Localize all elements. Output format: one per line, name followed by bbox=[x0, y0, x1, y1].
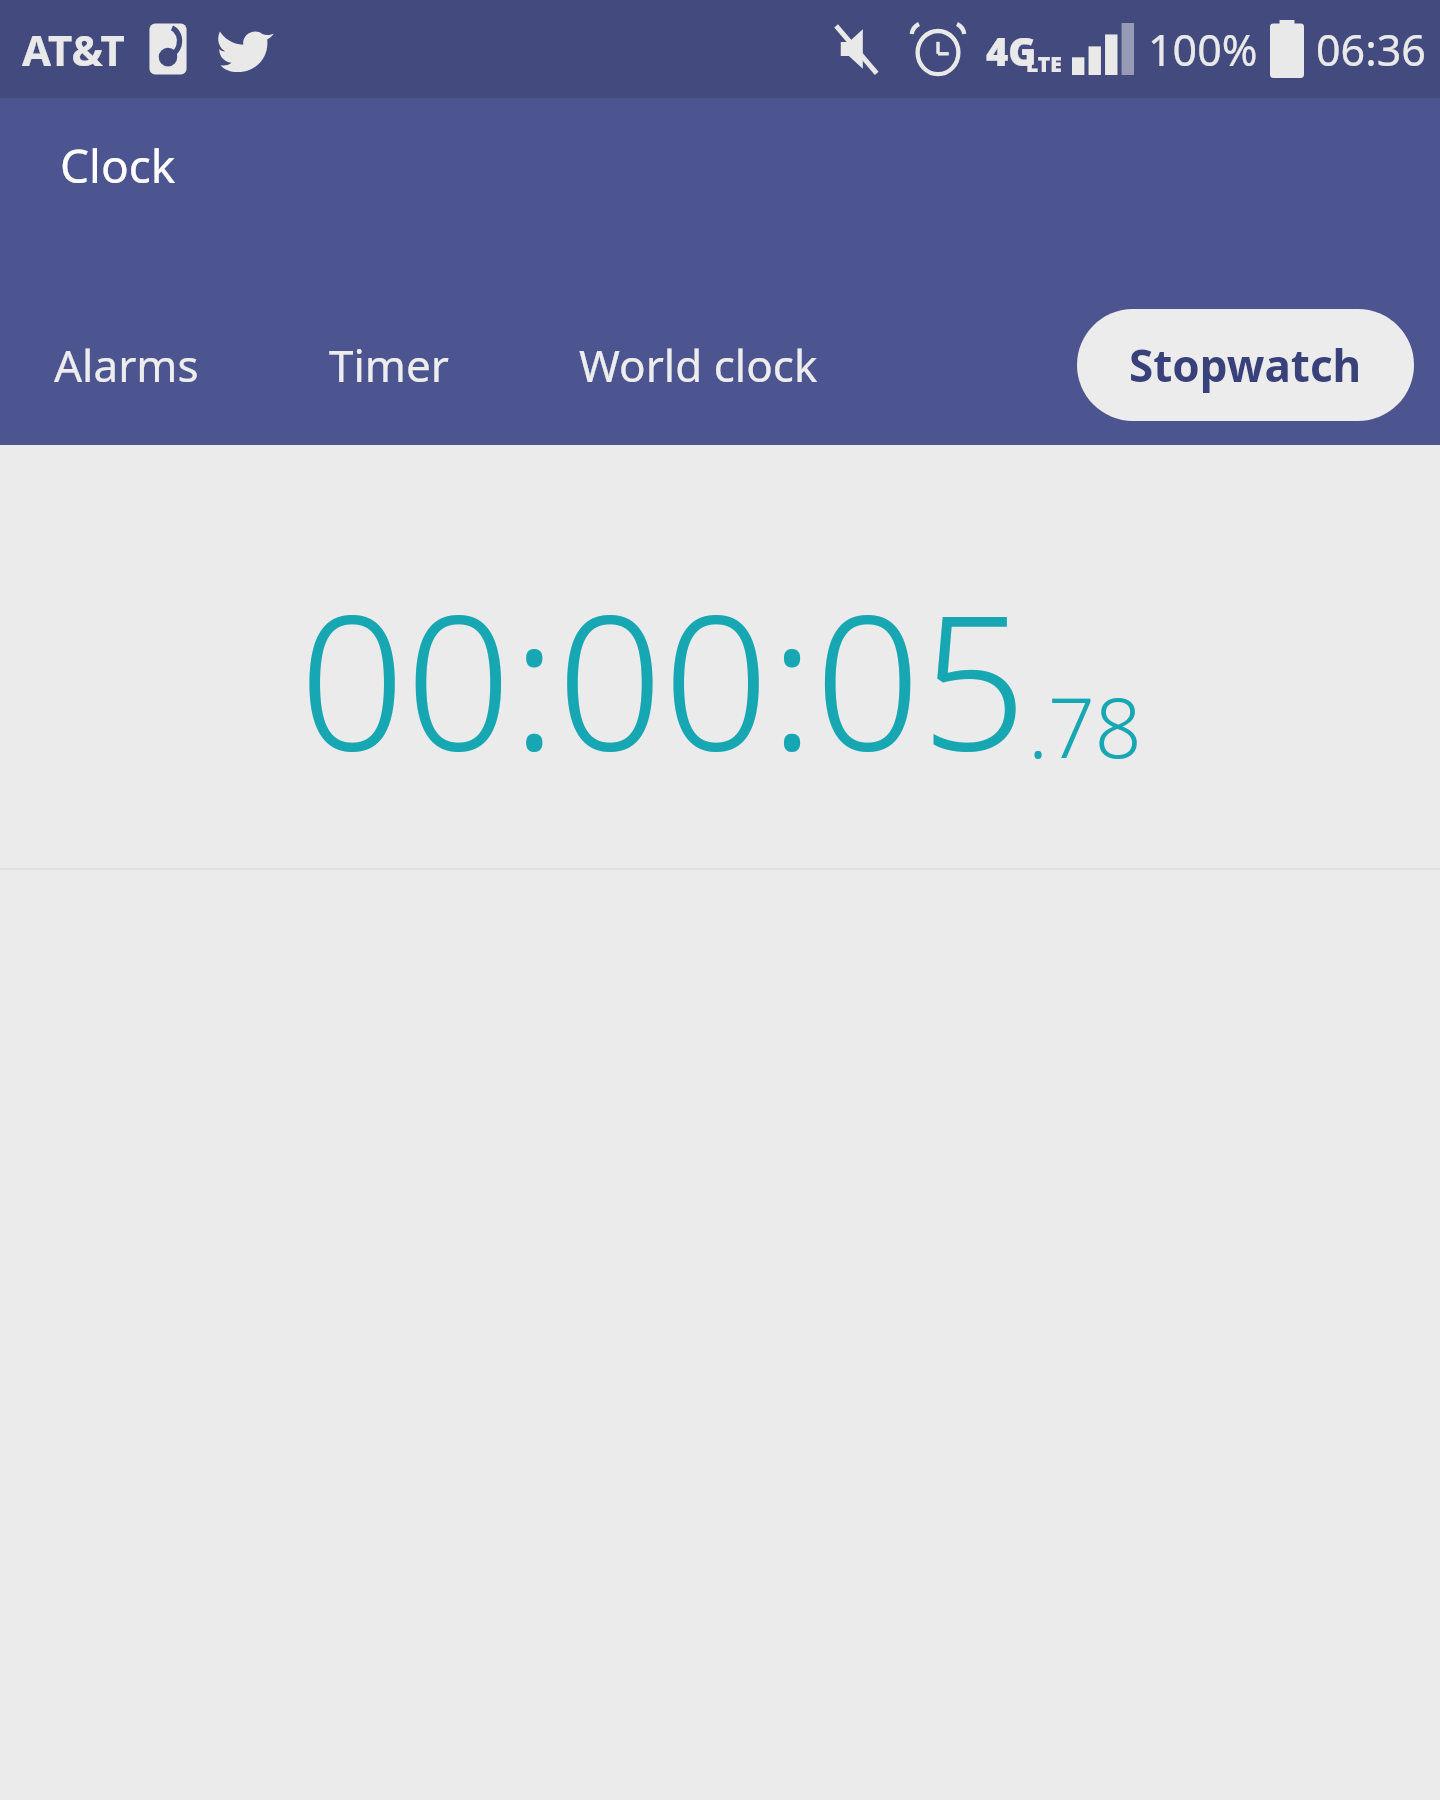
button[interactable]: World clock bbox=[569, 317, 828, 413]
staticText: Timer bbox=[329, 335, 449, 395]
button[interactable]: Alarms bbox=[44, 317, 209, 413]
staticText: 00:00:05 bbox=[299, 551, 1028, 804]
staticText: 4G bbox=[986, 25, 1037, 77]
staticText: Alarms bbox=[54, 335, 199, 395]
button[interactable]: Stopwatch bbox=[1077, 309, 1414, 421]
button[interactable]: Timer bbox=[319, 317, 459, 413]
staticText: 06:36 bbox=[1316, 20, 1426, 79]
button[interactable]: Stopwatch elapsed time bbox=[0, 445, 1440, 870]
staticText: 100% bbox=[1148, 20, 1258, 79]
staticText: AT&T bbox=[22, 21, 125, 78]
staticText: .78 bbox=[1028, 670, 1142, 782]
staticText: Stopwatch bbox=[1129, 335, 1362, 395]
staticText: Clock bbox=[60, 134, 176, 197]
staticText: World clock bbox=[579, 335, 818, 395]
staticText: LTE bbox=[1026, 50, 1062, 79]
